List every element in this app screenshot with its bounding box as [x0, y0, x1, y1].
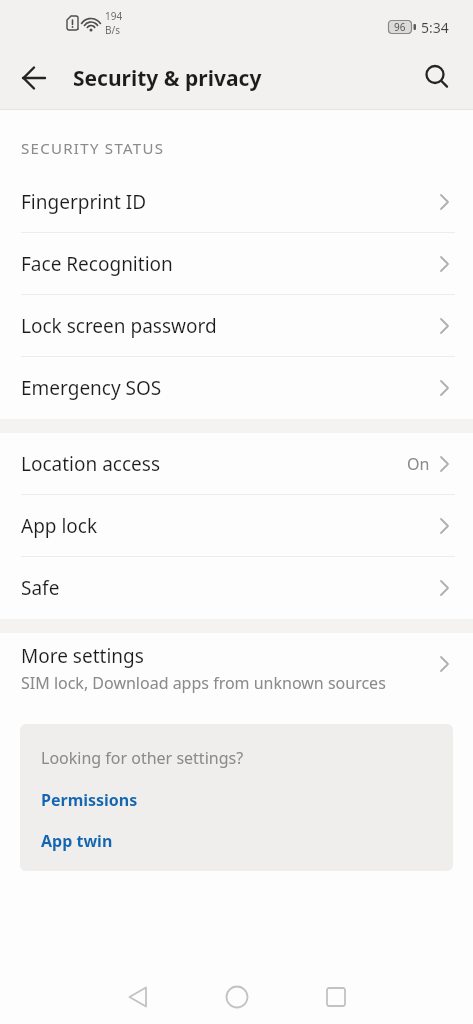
staticText: B/s — [105, 23, 121, 37]
button[interactable]: Safe — [0, 557, 473, 619]
button[interactable] — [12, 56, 56, 100]
staticText: Emergency SOS — [21, 375, 162, 401]
button[interactable]: Face Recognition — [0, 233, 473, 295]
button[interactable]: Lock screen password — [0, 295, 473, 357]
staticText: SECURITY STATUS — [21, 138, 165, 158]
staticText: Face Recognition — [21, 251, 173, 277]
staticText: More settings — [21, 643, 144, 669]
button[interactable]: Location access — [0, 433, 473, 495]
staticText: On — [407, 453, 430, 475]
staticText: Lock screen password — [21, 313, 217, 339]
staticText: Safe — [21, 575, 60, 601]
staticText: Location access — [21, 451, 160, 477]
staticText: Looking for other settings? — [41, 747, 244, 769]
button[interactable]: More settings — [0, 633, 473, 703]
button[interactable]: Emergency SOS — [0, 357, 473, 419]
staticText: Security & privacy — [73, 64, 262, 93]
staticText: Fingerprint ID — [21, 189, 147, 215]
button[interactable]: Fingerprint ID — [0, 171, 473, 233]
button[interactable]: Permissions — [41, 789, 138, 811]
staticText: SIM lock, Download apps from unknown sou… — [21, 672, 386, 694]
button[interactable] — [415, 56, 459, 100]
button[interactable]: App twin — [41, 830, 113, 852]
button[interactable] — [303, 970, 369, 1024]
button[interactable] — [105, 970, 171, 1024]
staticText: App lock — [21, 513, 98, 539]
button[interactable]: App lock — [0, 495, 473, 557]
button[interactable] — [204, 970, 270, 1024]
staticText: 194 — [105, 9, 123, 23]
staticText: 5:34 — [421, 18, 449, 37]
staticText: 96 — [394, 20, 406, 34]
